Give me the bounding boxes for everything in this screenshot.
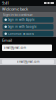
staticText: Welcome back (2, 6, 28, 12)
button[interactable]: Continue as Guest (2, 31, 53, 36)
button[interactable]: email@gmail.com (2, 44, 52, 51)
button[interactable]: Sign in with Apple (2, 17, 53, 22)
staticText: Continue as Guest (8, 32, 34, 35)
staticText: Email (2, 38, 12, 43)
staticText: Sign in with Apple (8, 18, 35, 21)
staticText: email@gmail.com (3, 46, 25, 49)
staticText: email@gmail.com (17, 60, 39, 63)
staticText: Sign in to continue (2, 12, 32, 17)
staticText: Sign in with Google (8, 25, 37, 28)
button[interactable]: email@gmail.com (2, 59, 54, 64)
staticText: 9:41 (2, 0, 9, 6)
button[interactable]: Sign in with Google (2, 24, 53, 29)
